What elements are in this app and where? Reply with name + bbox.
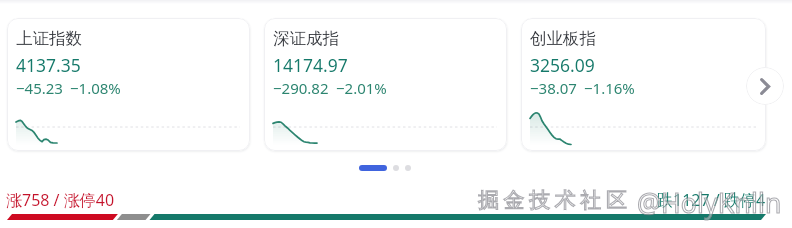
staticText: 跌1127 / 跌停4 — [657, 189, 766, 211]
staticText: 3256.09 — [530, 53, 595, 77]
staticText: 掘金技术社区 — [478, 187, 632, 213]
staticText: −45.23 — [16, 78, 63, 98]
staticText: 创业板指 — [530, 28, 596, 49]
staticText: −2.01% — [336, 78, 387, 98]
button[interactable]: 上证指数 — [7, 18, 250, 151]
button[interactable]: Next — [746, 67, 784, 105]
staticText: 4137.35 — [16, 53, 81, 77]
staticText: 掘金技术社区 — [478, 187, 632, 213]
staticText: @HolyKnlln — [637, 185, 782, 221]
staticText: −290.82 — [273, 78, 329, 98]
staticText: −1.16% — [584, 78, 635, 98]
staticText: −1.08% — [70, 78, 121, 98]
staticText: 涨758 / 涨停40 — [6, 189, 115, 211]
button[interactable]: 深证成指 — [264, 18, 507, 151]
staticText: 14174.97 — [273, 53, 348, 77]
staticText: @HolyKnlln — [637, 185, 782, 221]
staticText: 深证成指 — [273, 28, 339, 49]
staticText: 上证指数 — [16, 28, 82, 49]
staticText: −38.07 — [530, 78, 577, 98]
button[interactable]: 创业板指 — [521, 18, 766, 151]
